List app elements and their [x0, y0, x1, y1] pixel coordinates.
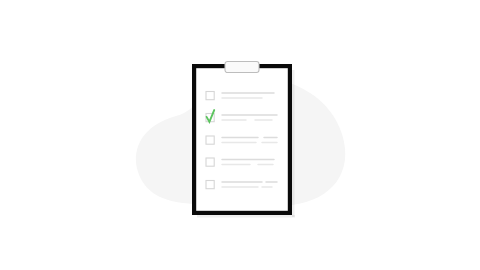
button[interactable]: Checklist illustration [0, 0, 480, 270]
